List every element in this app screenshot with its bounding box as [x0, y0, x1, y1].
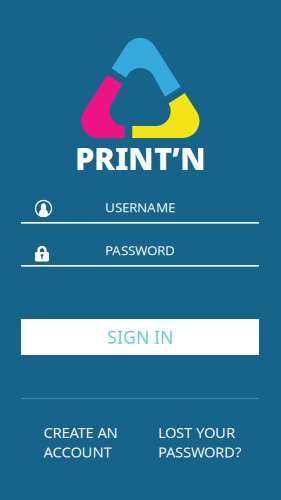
staticText: PASSWORD: [105, 241, 175, 259]
staticText: PRINT’N: [75, 138, 206, 178]
button[interactable]: LOST YOUR PASSWORD?: [140, 424, 259, 460]
button[interactable]: CREATE AN ACCOUNT: [21, 424, 140, 460]
button[interactable]: SIGN IN: [21, 319, 259, 355]
staticText: SIGN IN: [107, 325, 173, 348]
staticText: USERNAME: [105, 198, 175, 216]
staticText: LOST YOUR PASSWORD?: [158, 422, 241, 461]
staticText: CREATE AN ACCOUNT: [43, 422, 117, 461]
